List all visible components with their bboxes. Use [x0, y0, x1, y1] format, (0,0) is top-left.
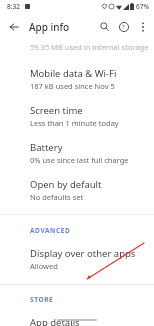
staticText: Display over other apps: [30, 247, 136, 260]
button[interactable]: App details: [0, 304, 154, 326]
staticText: Mobile data & Wi-Fi: [30, 67, 117, 80]
staticText: App info: [29, 20, 70, 34]
button[interactable]: Open by default: [0, 165, 154, 202]
button[interactable]: Screen time: [0, 91, 154, 128]
staticText: Battery: [30, 141, 63, 154]
staticText: Less than 1 minute today: [30, 118, 119, 128]
staticText: 187 kB used since Nov 5: [30, 81, 115, 91]
staticText: 8:32: [7, 2, 20, 11]
button[interactable]: Help: [114, 17, 133, 36]
staticText: Allowed: [30, 261, 58, 271]
staticText: Screen time: [30, 104, 83, 117]
staticText: App details: [30, 316, 80, 326]
button[interactable]: Battery: [0, 128, 154, 165]
staticText: ADVANCED: [30, 226, 71, 235]
button[interactable]: Back: [3, 16, 25, 38]
button[interactable]: More options: [133, 17, 152, 36]
button[interactable]: Mobile data & Wi-Fi: [0, 52, 154, 91]
button[interactable]: Display over other apps: [0, 235, 154, 271]
staticText: 0% use since last full charge: [30, 155, 129, 165]
staticText: No defaults set: [30, 192, 84, 202]
button[interactable]: Search: [95, 17, 114, 36]
staticText: 59.35 MB used in internal storage: [30, 42, 149, 52]
staticText: STORE: [30, 295, 54, 304]
staticText: 67%: [136, 2, 149, 11]
staticText: ?: [122, 23, 125, 30]
staticText: Open by default: [30, 178, 102, 191]
